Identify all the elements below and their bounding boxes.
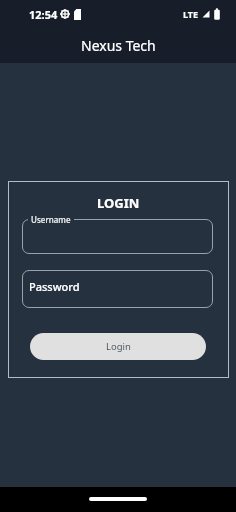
staticText: Login (106, 340, 131, 353)
button[interactable]: Username (22, 219, 213, 254)
button[interactable]: Login (30, 333, 206, 360)
staticText: Password (29, 279, 80, 294)
staticText: Username (31, 214, 71, 225)
button[interactable]: Password (22, 270, 213, 308)
staticText: Nexus Tech (81, 36, 156, 55)
staticText: 12:54 (29, 7, 58, 22)
staticText: LOGIN (97, 194, 140, 212)
staticText: LTE (183, 8, 199, 20)
